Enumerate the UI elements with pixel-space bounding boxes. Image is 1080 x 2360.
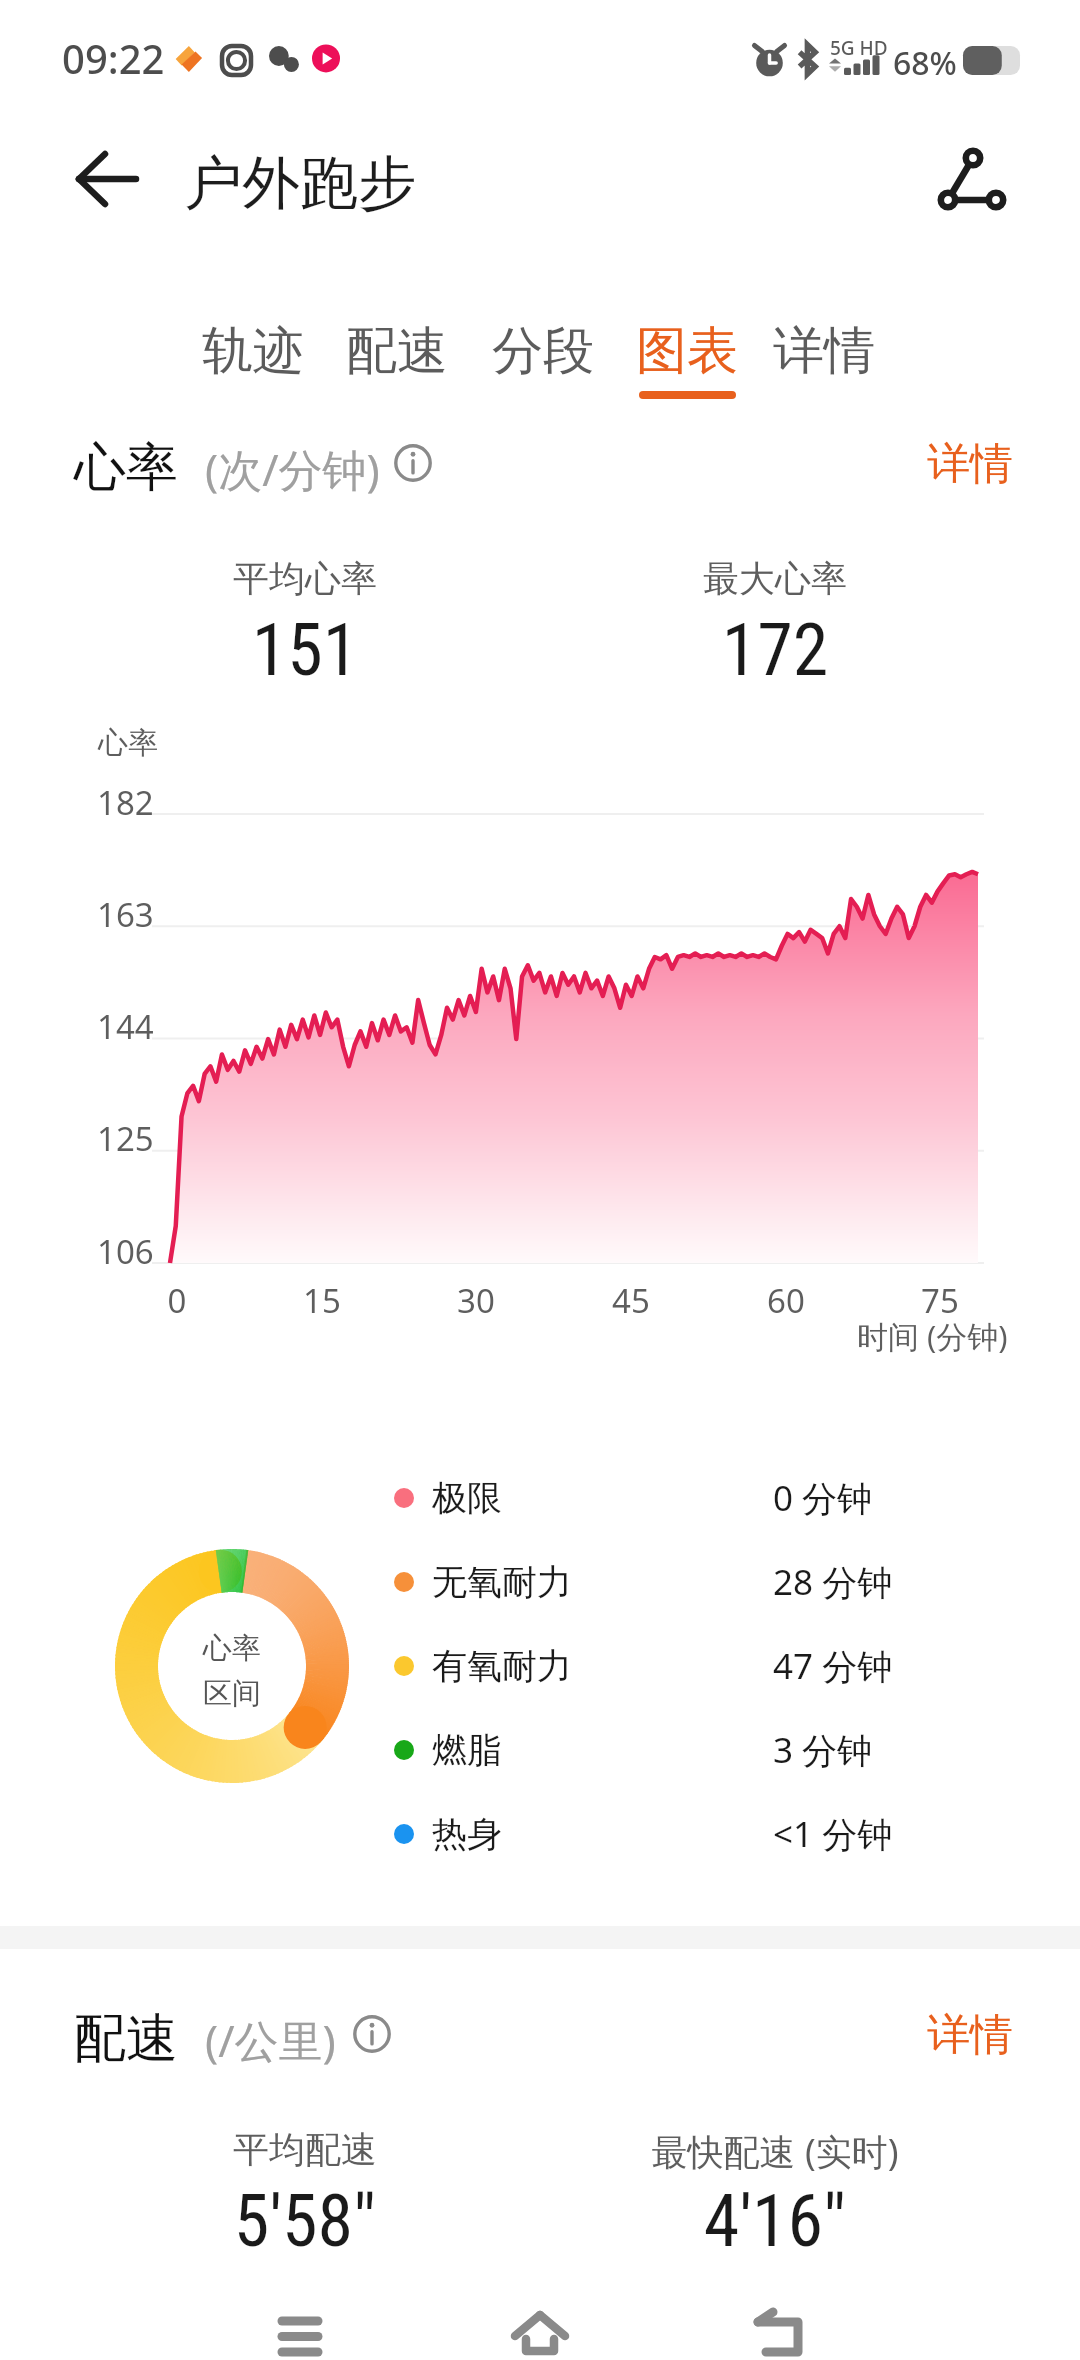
staticText: 0 [147,1278,207,1323]
staticText: 心率 [203,1630,261,1667]
button[interactable]: 有氧耐力 [394,1629,954,1703]
staticText: 30 [446,1278,506,1323]
button[interactable]: 主页 [480,2280,600,2360]
staticText: 106 [97,1229,154,1274]
staticText: 5'58" [105,2179,505,2263]
staticText: (次/分钟) [205,439,380,499]
button[interactable]: 轨迹 [191,319,315,417]
staticText: (/公里) [205,2010,336,2070]
button[interactable]: 说明 [341,2003,403,2065]
button[interactable]: 热身 [394,1797,954,1871]
staticText: 最大心率 [575,556,975,601]
button[interactable]: 分享 [910,140,1040,240]
staticText: 47 分钟 [773,1642,893,1690]
staticText: 75 [910,1278,970,1323]
staticText: 燃脂 [432,1728,502,1772]
staticText: 15 [292,1278,352,1323]
staticText: 28 分钟 [773,1558,893,1606]
staticText: 60 [756,1278,816,1323]
button[interactable]: 详情 [927,437,1013,487]
staticText: 平均配速 [105,2127,505,2172]
button[interactable]: 返回 [40,130,160,230]
staticText: 125 [97,1116,154,1161]
button[interactable]: 燃脂 [394,1713,954,1787]
staticText: 区间 [203,1675,261,1712]
staticText: 时间 (分钟) [857,1315,1008,1357]
staticText: 极限 [432,1476,502,1520]
staticText: 4'16" [575,2179,975,2263]
staticText: 配速 [74,2006,178,2072]
button[interactable]: 极限 [394,1461,954,1535]
staticText: 182 [97,780,154,825]
staticText: <1 分钟 [773,1810,893,1858]
button[interactable]: 详情 [927,2008,1013,2058]
button[interactable]: 配速 [335,319,459,417]
staticText: 户外跑步 [184,147,416,220]
staticText: 配速 [346,319,448,383]
button[interactable]: 图表 [625,319,749,417]
staticText: 最快配速 (实时) [575,2127,975,2176]
staticText: 09:22 [62,31,165,85]
staticText: 详情 [773,319,875,383]
staticText: 无氧耐力 [432,1560,572,1604]
button[interactable]: 详情 [762,319,886,417]
staticText: 3 分钟 [773,1726,873,1774]
staticText: 详情 [927,2008,1013,2058]
button[interactable]: 最近任务 [240,2280,360,2360]
staticText: 分段 [492,319,594,383]
staticText: 163 [97,892,154,937]
staticText: 有氧耐力 [432,1644,572,1688]
staticText: 68% [893,41,957,85]
staticText: 0 分钟 [773,1474,873,1522]
staticText: 热身 [432,1812,502,1856]
staticText: 5G HD [830,35,888,61]
staticText: 144 [97,1004,154,1049]
staticText: 心率 [74,435,178,501]
staticText: 151 [105,608,505,692]
staticText: 172 [575,608,975,692]
staticText: 轨迹 [202,319,304,383]
staticText: 心率 [98,724,158,762]
button[interactable]: 说明 [382,432,444,494]
staticText: 图表 [636,319,738,383]
staticText: 详情 [927,437,1013,487]
button[interactable]: 无氧耐力 [394,1545,954,1619]
button[interactable]: 分段 [481,319,605,417]
button[interactable]: 返回 [720,2280,840,2360]
staticText: 平均心率 [105,556,505,601]
staticText: 45 [601,1278,661,1323]
